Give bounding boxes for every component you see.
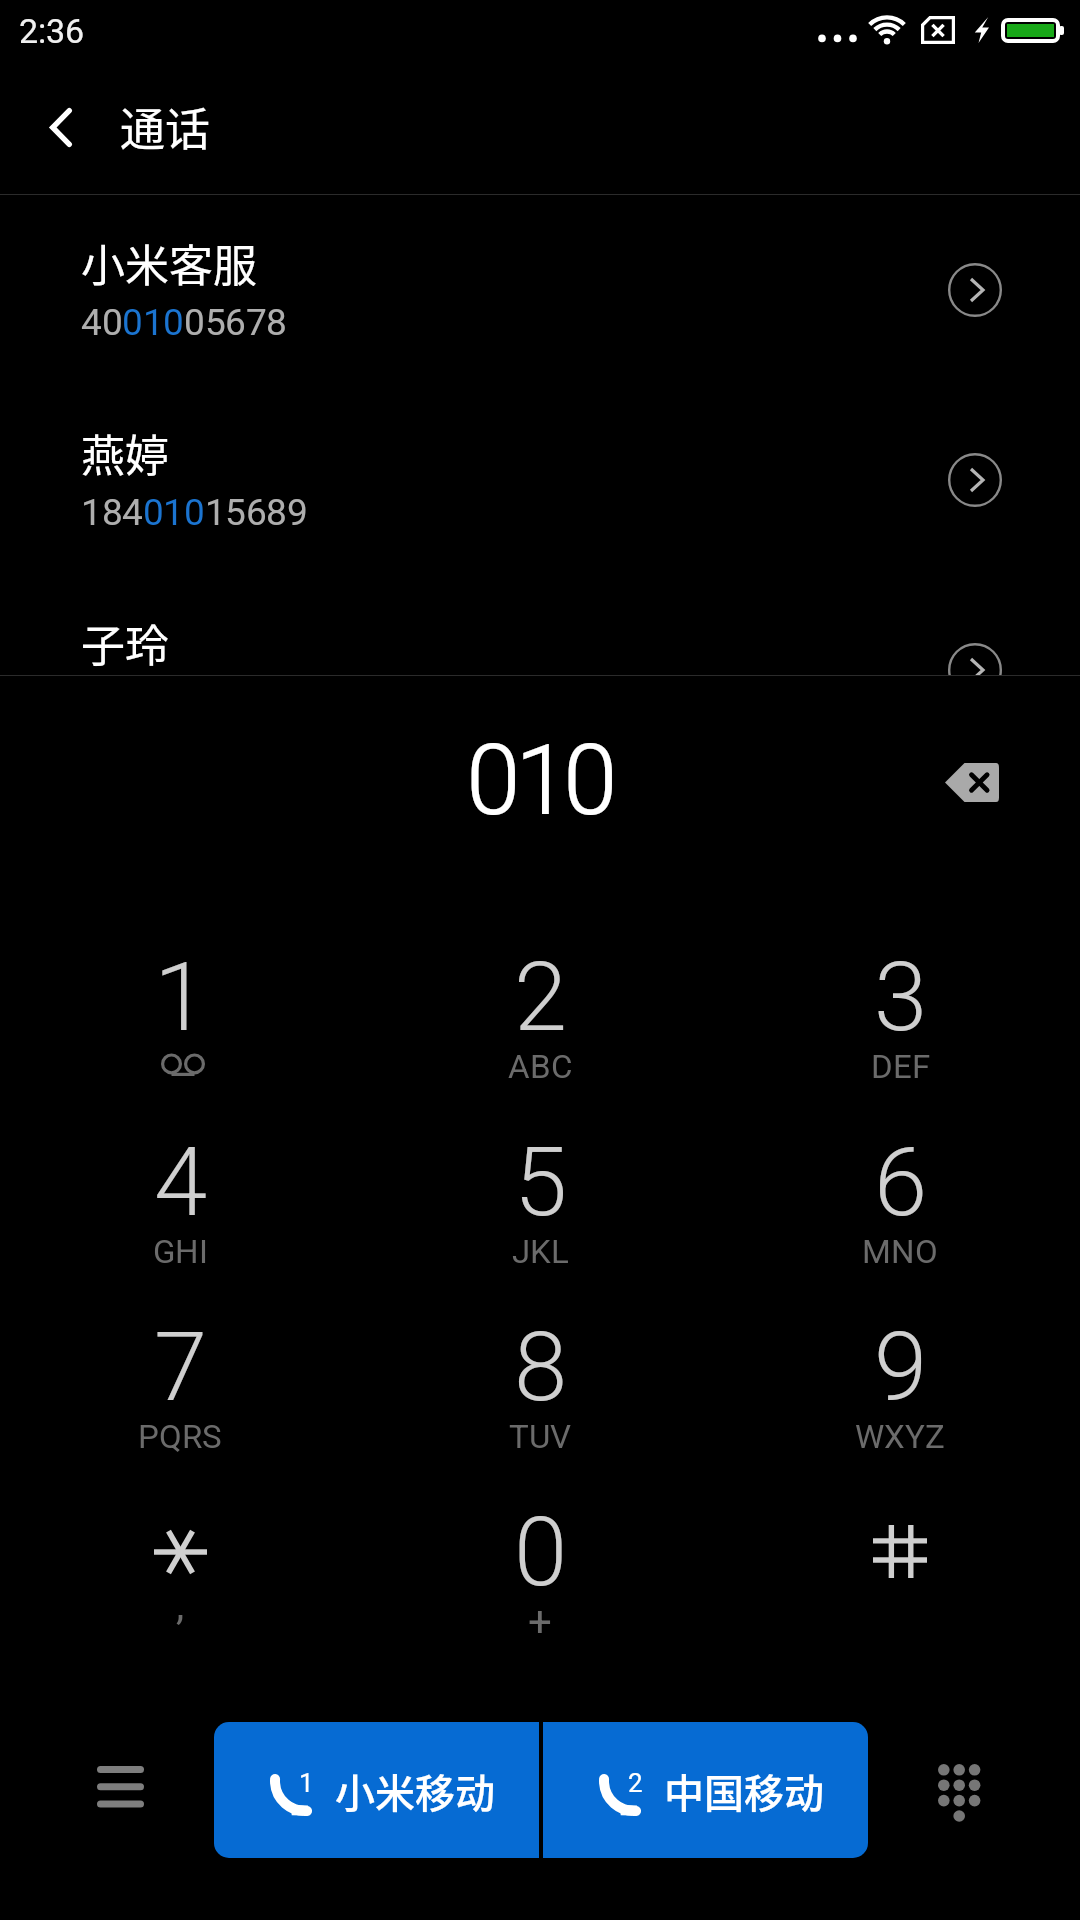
button[interactable]: 2 <box>360 925 720 1110</box>
button[interactable]: Open contact <box>895 195 1055 385</box>
button[interactable]: 7 <box>0 1295 360 1480</box>
button[interactable]: 1 <box>0 925 360 1110</box>
button[interactable]: Open contact <box>895 575 1055 675</box>
staticText: 通话 <box>120 94 211 159</box>
button[interactable]: * <box>0 1480 360 1665</box>
button[interactable]: 小米客服 <box>0 195 1080 385</box>
button[interactable]: 小米移动 <box>214 1722 539 1858</box>
staticText: 小米移动 <box>335 1762 495 1820</box>
button[interactable]: 9 <box>720 1295 1080 1480</box>
button[interactable]: Backspace <box>917 727 1027 837</box>
button[interactable]: Open contact <box>895 385 1055 575</box>
button[interactable]: Call history <box>70 1749 170 1837</box>
button[interactable]: 子玲 <box>0 575 1080 675</box>
button[interactable]: 8 <box>360 1295 720 1480</box>
staticText: 燕婷 <box>81 421 169 485</box>
button[interactable]: 0 <box>360 1480 720 1665</box>
staticText: 子玲 <box>81 611 169 675</box>
button[interactable]: # <box>720 1480 1080 1665</box>
button[interactable]: 中国移动 <box>543 1722 868 1858</box>
button[interactable]: Keypad <box>912 1749 1008 1837</box>
button[interactable]: Back <box>0 60 118 194</box>
button[interactable]: 燕婷 <box>0 385 1080 575</box>
button[interactable]: 5 <box>360 1110 720 1295</box>
staticText: 小米客服 <box>81 231 257 295</box>
button[interactable]: 3 <box>720 925 1080 1110</box>
button[interactable]: 6 <box>720 1110 1080 1295</box>
button[interactable]: 4 <box>0 1110 360 1295</box>
staticText: 中国移动 <box>664 1762 824 1820</box>
